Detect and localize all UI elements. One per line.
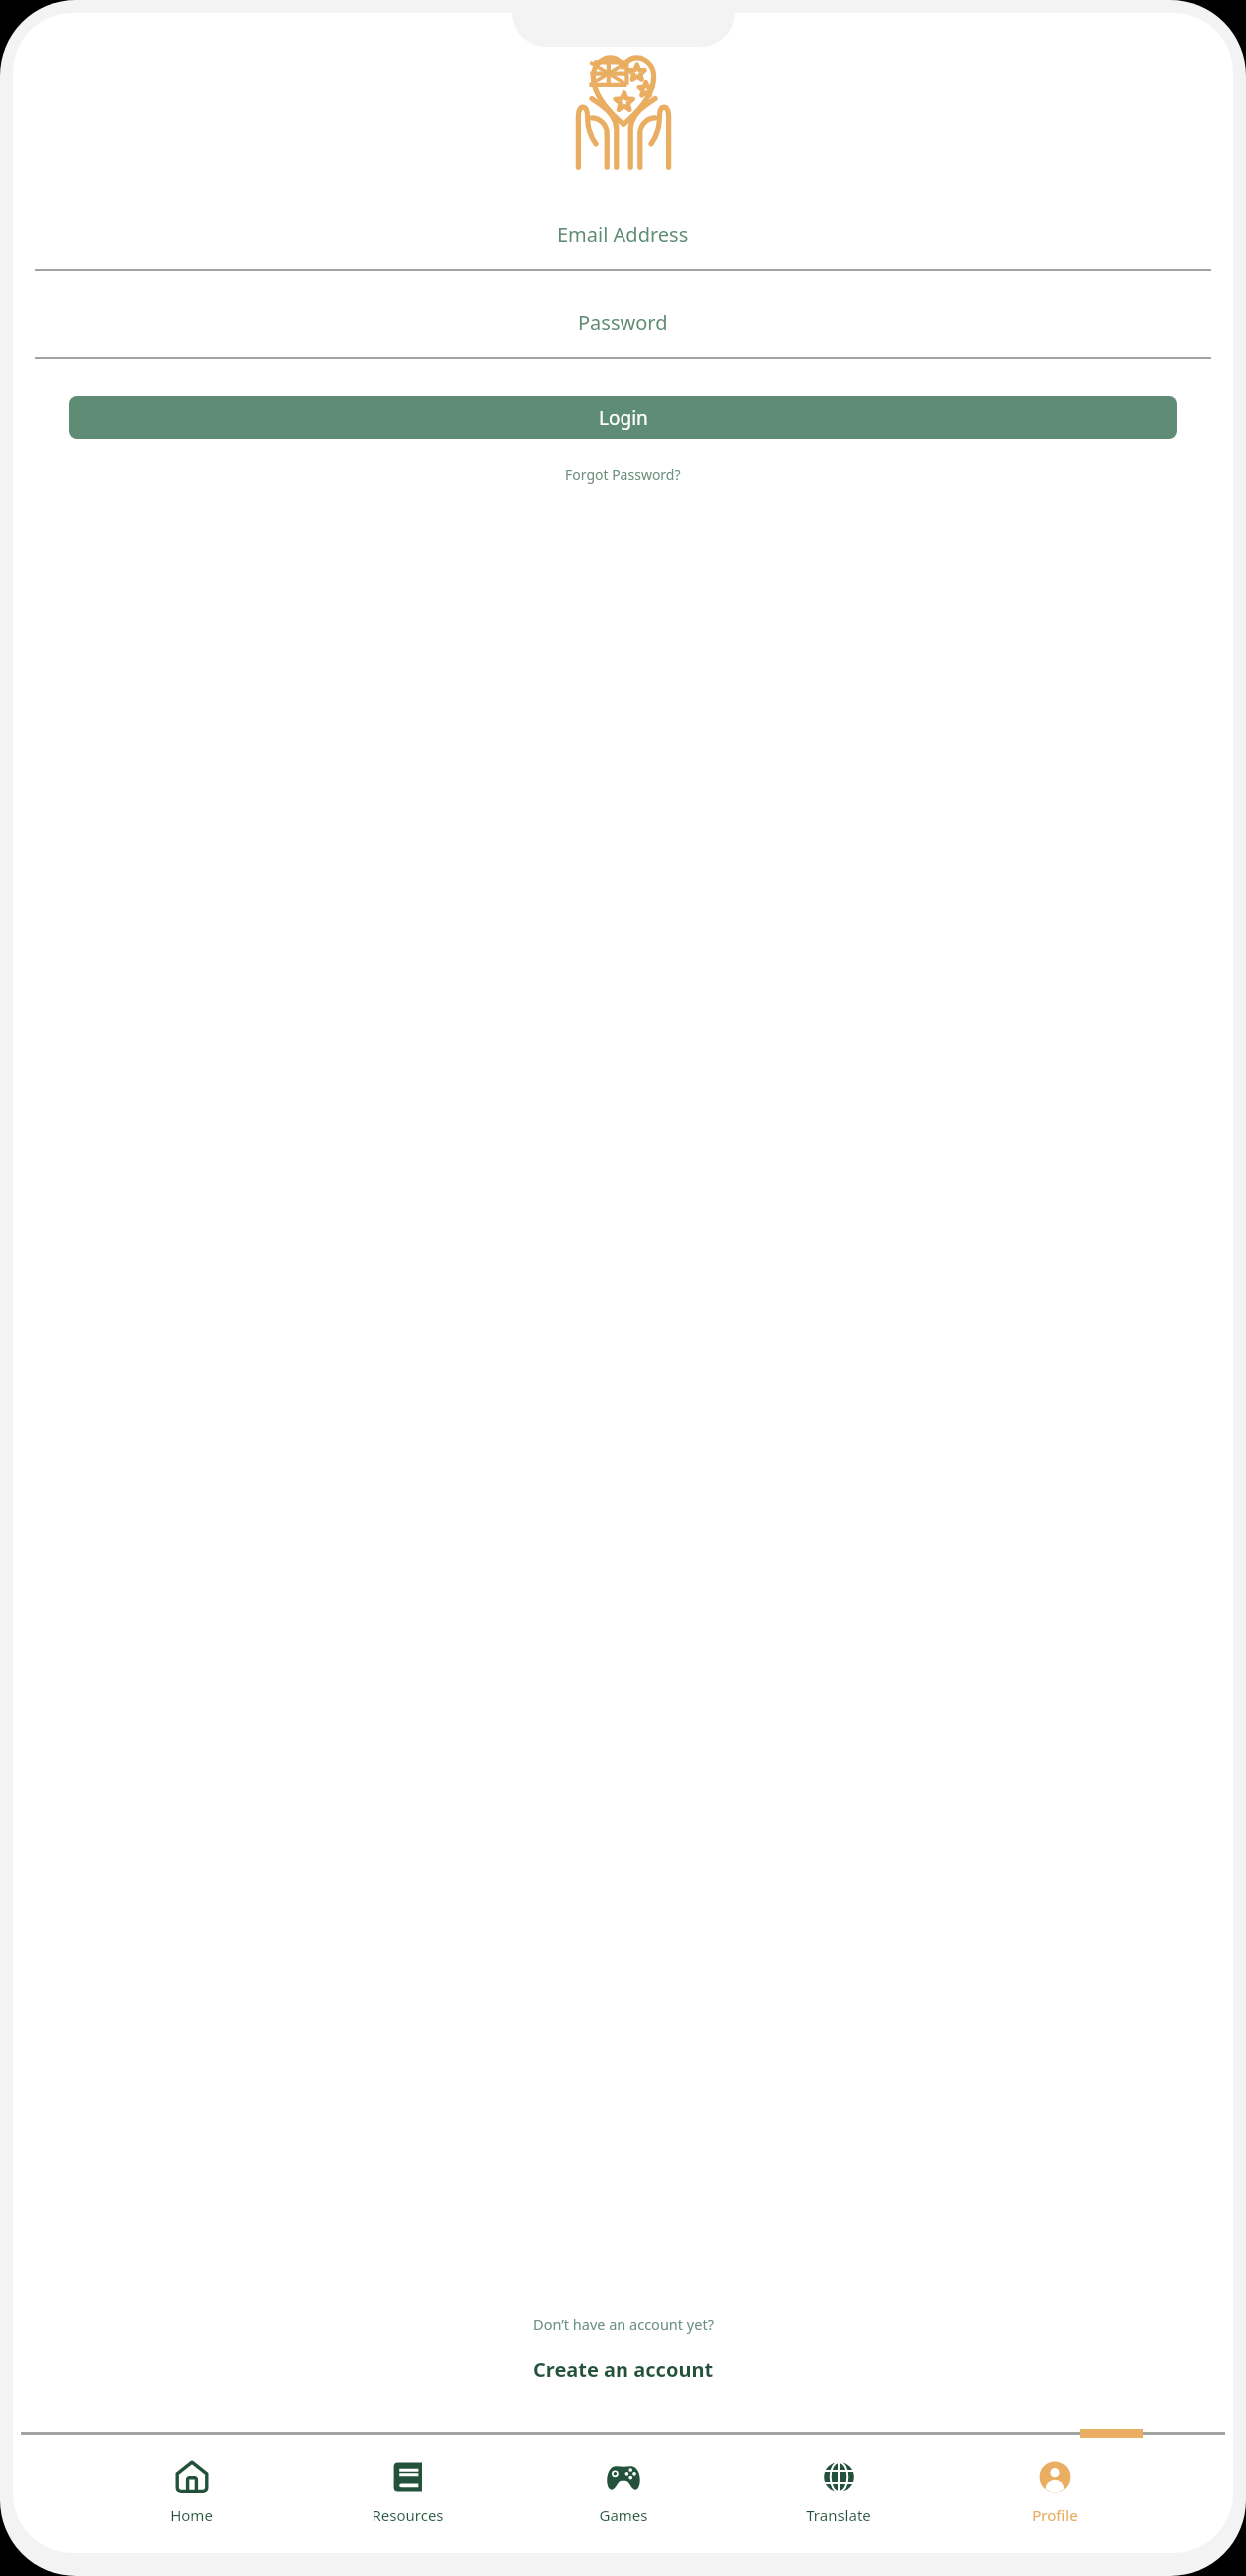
staticText: Games (599, 2505, 648, 2525)
staticText: Resources (372, 2505, 444, 2525)
staticText: Password (578, 309, 668, 336)
staticText: Home (170, 2505, 213, 2525)
button[interactable]: Login (69, 396, 1177, 439)
button[interactable]: Home (149, 2455, 234, 2527)
button[interactable]: Email Address (35, 211, 1211, 271)
button[interactable]: Translate (796, 2455, 880, 2527)
staticText: Create an account (533, 2356, 714, 2383)
button[interactable]: Games (581, 2455, 665, 2527)
button[interactable]: Profile (1012, 2455, 1097, 2527)
staticText: Profile (1032, 2505, 1078, 2525)
button[interactable]: Password (35, 299, 1211, 359)
button[interactable]: Resources (366, 2455, 450, 2527)
button[interactable]: Forgot Password? (551, 460, 695, 489)
staticText: Don’t have an account yet? (533, 2314, 714, 2334)
button[interactable]: Create an account (519, 2352, 728, 2387)
staticText: Translate (806, 2505, 871, 2525)
other: App logo (544, 50, 703, 169)
staticText: Forgot Password? (565, 465, 681, 484)
staticText: Login (599, 405, 648, 431)
staticText: Email Address (557, 221, 689, 248)
